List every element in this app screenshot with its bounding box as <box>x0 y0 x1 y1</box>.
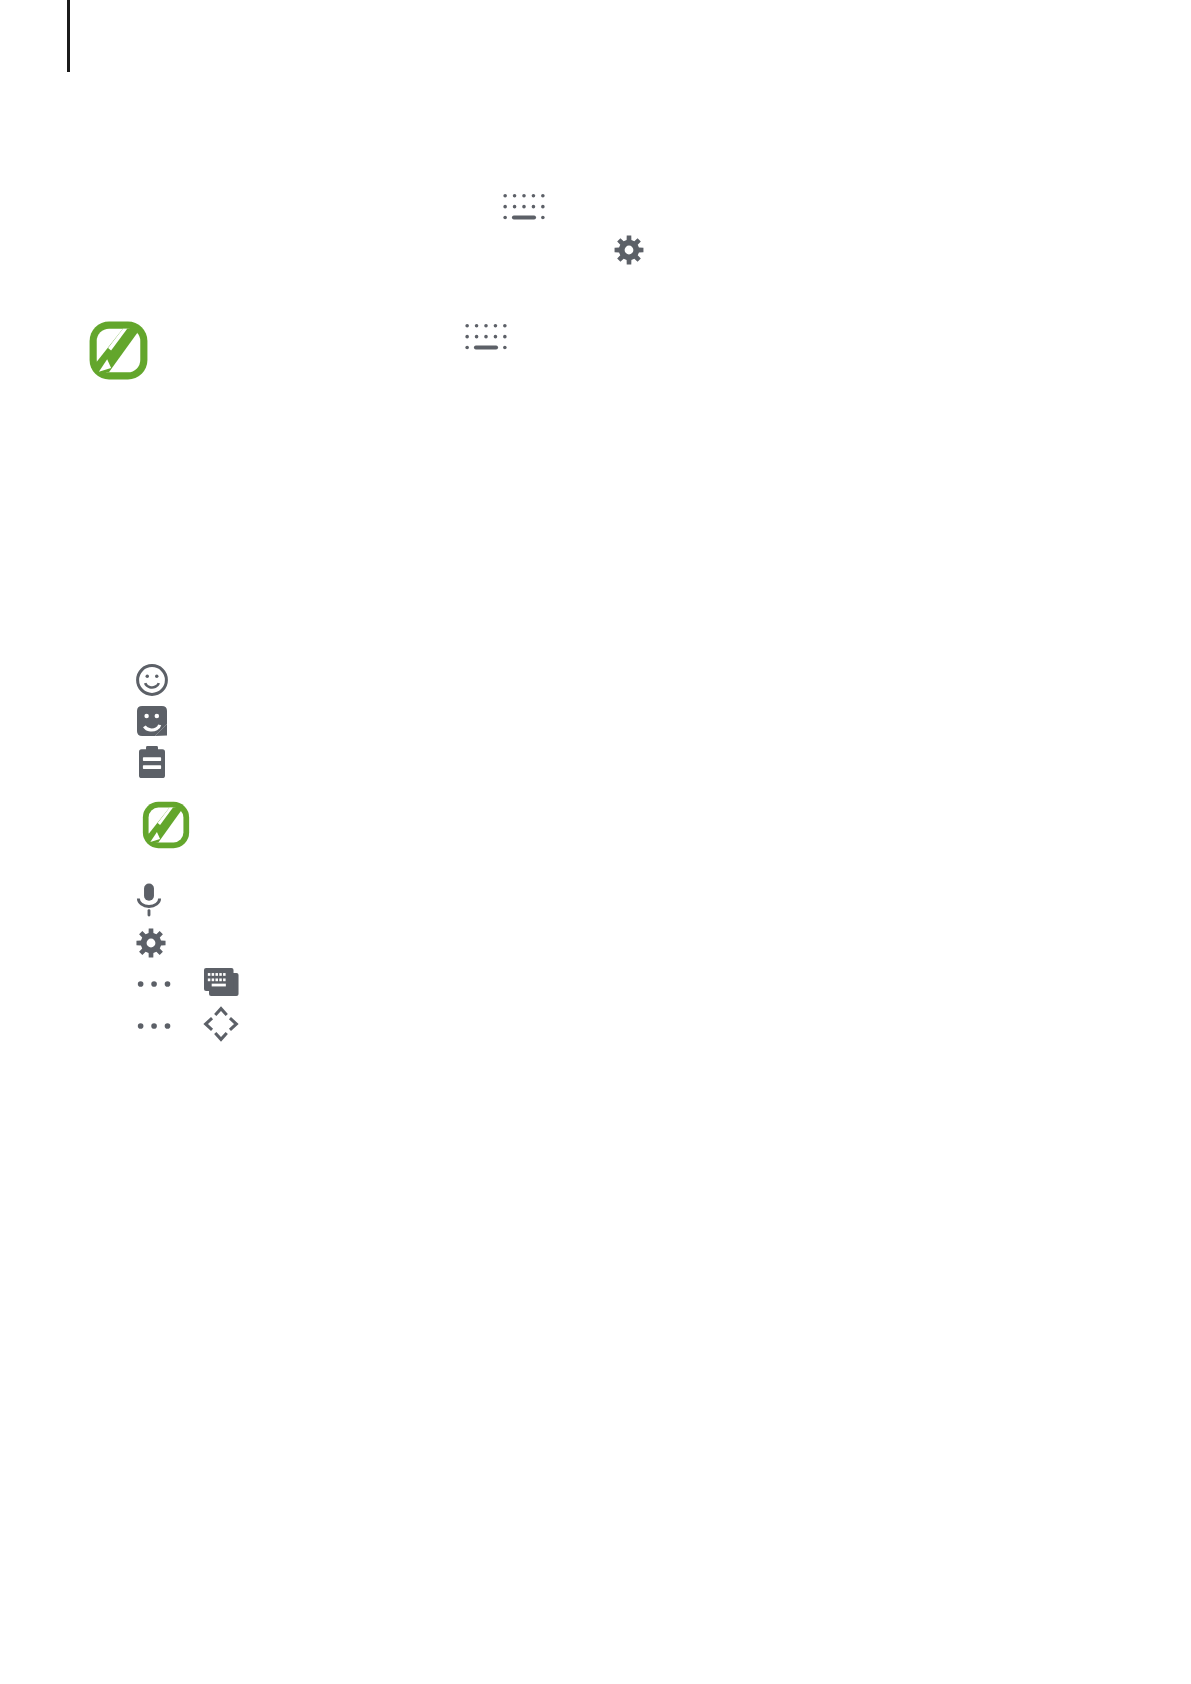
button[interactable]: Settings <box>612 233 646 267</box>
button[interactable]: Move keyboard <box>205 1008 237 1040</box>
button[interactable]: Keyboard settings <box>135 927 167 959</box>
button[interactable]: Emoji <box>136 664 168 696</box>
button[interactable]: Samsung Notes <box>86 318 151 383</box>
button[interactable]: Voice input <box>134 882 164 918</box>
button[interactable]: Stickers <box>137 706 167 736</box>
button[interactable]: Samsung Notes <box>140 799 192 851</box>
button[interactable]: Switch keyboard <box>204 968 240 1002</box>
button[interactable]: Keyboard <box>501 190 547 224</box>
button[interactable]: More options <box>136 1015 178 1037</box>
button[interactable]: Keyboard <box>463 320 509 354</box>
button[interactable]: Clipboard <box>139 746 165 778</box>
button[interactable]: More options <box>136 973 178 995</box>
